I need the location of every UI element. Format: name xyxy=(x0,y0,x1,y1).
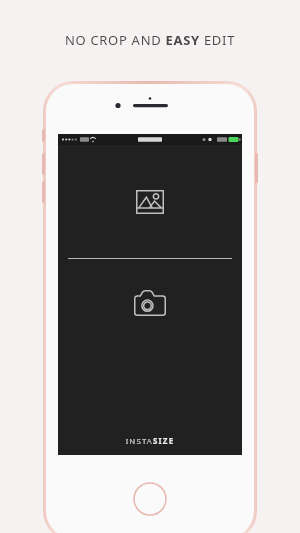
button[interactable]: Take photo with camera xyxy=(58,259,242,455)
button[interactable]: Choose photo from gallery xyxy=(58,145,242,258)
staticText: INSTASIZE xyxy=(58,435,242,446)
button[interactable]: Home xyxy=(133,482,167,516)
staticText: NO CROP AND EASY EDIT xyxy=(0,31,300,49)
